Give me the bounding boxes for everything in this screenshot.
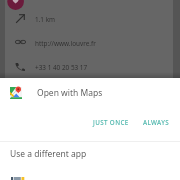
staticText: JUST ONCE [93, 118, 129, 127]
button[interactable]: JUST ONCE [86, 114, 136, 131]
button[interactable]: ALWAYS [136, 114, 177, 131]
staticText: Open with Maps [37, 87, 103, 99]
button[interactable]: Open with another app [11, 177, 25, 180]
staticText: ALWAYS [143, 118, 170, 127]
staticText: 1.1 km [35, 15, 56, 24]
staticText: +33 1 40 20 53 17 [35, 63, 88, 72]
staticText: http://www.louvre.fr [35, 39, 96, 48]
button[interactable]: Open with Maps [0, 80, 180, 106]
staticText: Use a different app [10, 148, 87, 160]
button[interactable]: Use a different app [0, 142, 180, 166]
